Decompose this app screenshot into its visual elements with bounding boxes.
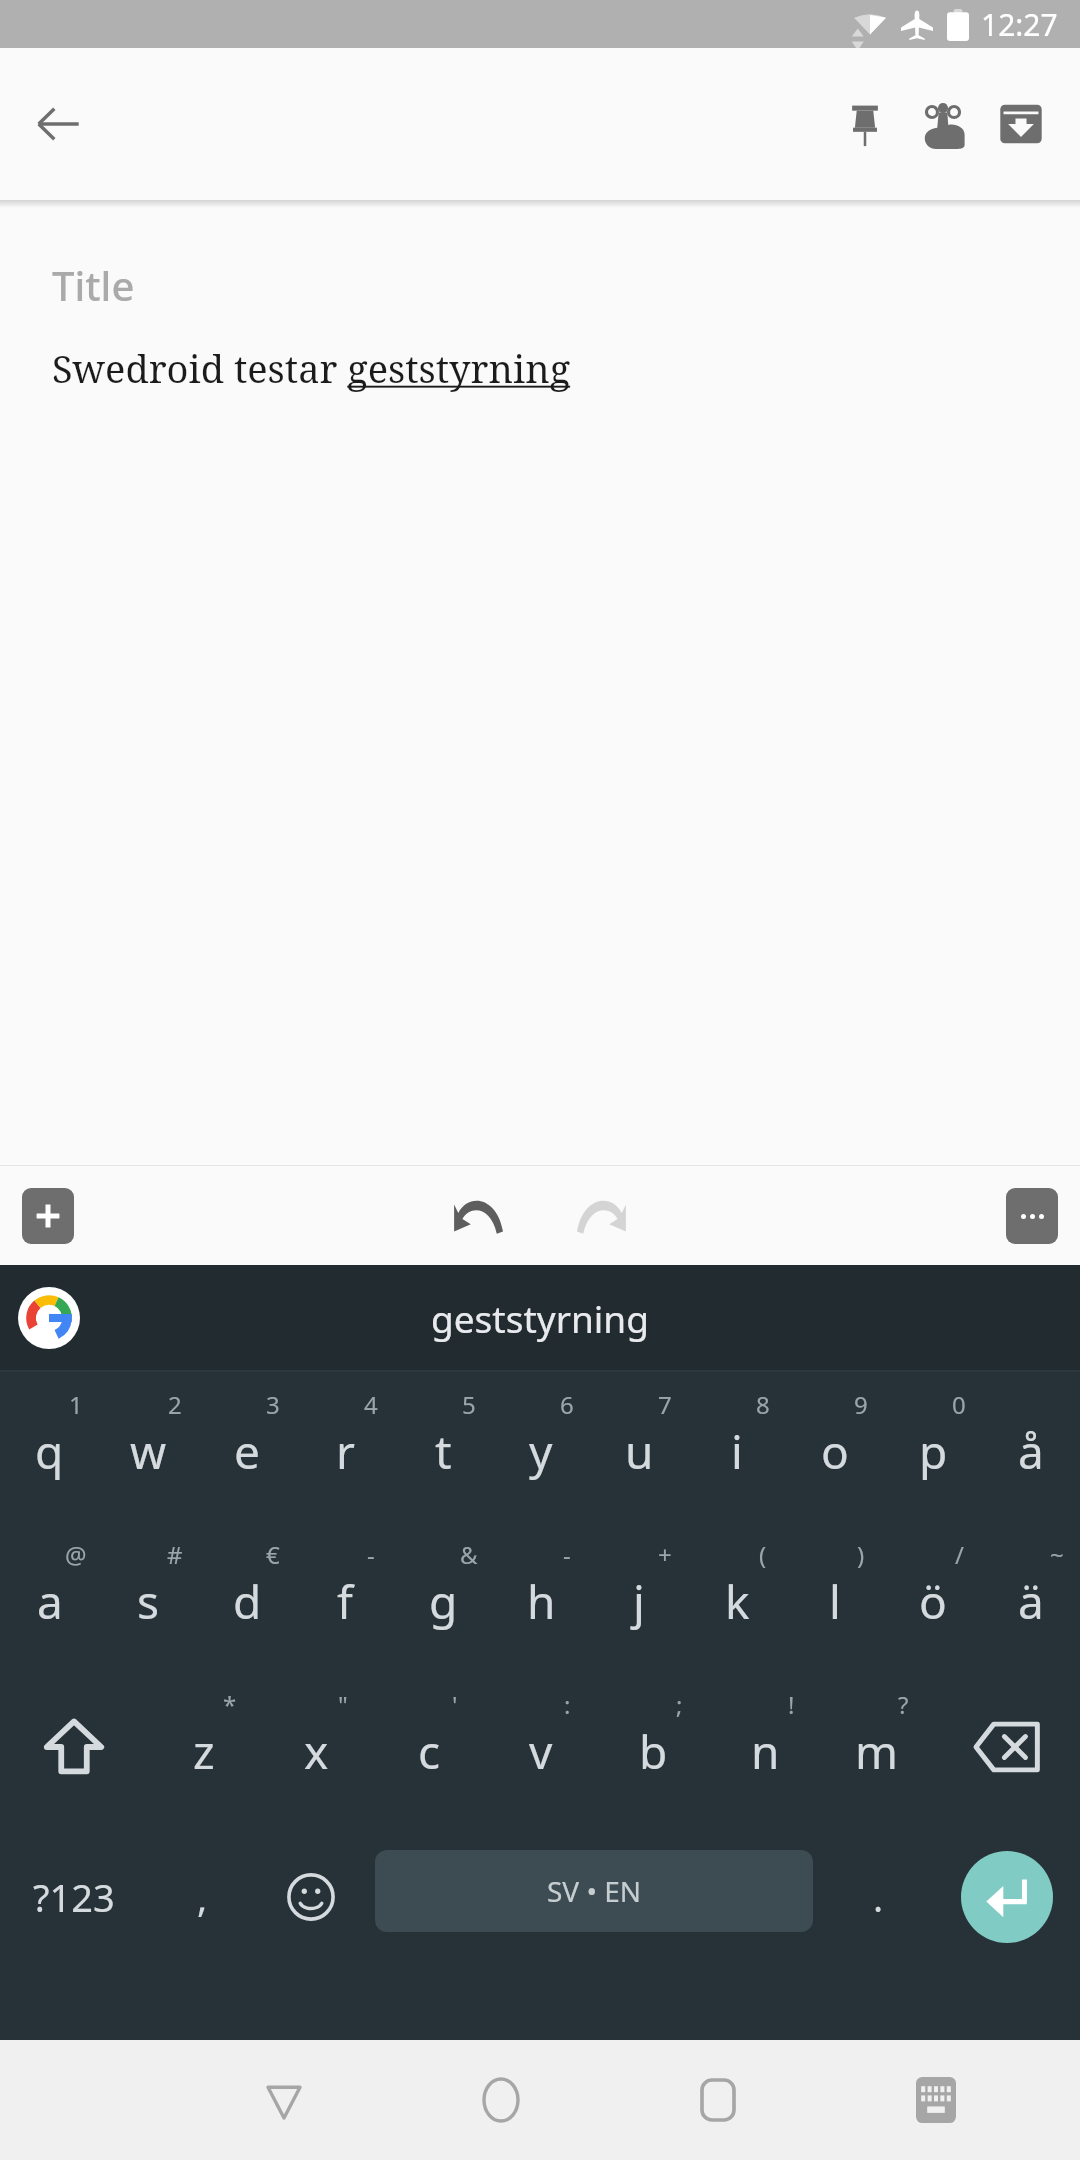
staticText: ä xyxy=(1018,1570,1044,1633)
button[interactable]: b xyxy=(597,1672,709,1822)
button[interactable]: m xyxy=(821,1672,933,1822)
staticText: " xyxy=(338,1688,348,1721)
button[interactable]: Recents xyxy=(609,2040,827,2160)
button[interactable]: p xyxy=(884,1372,982,1522)
staticText: ) xyxy=(857,1538,865,1571)
staticText: ( xyxy=(759,1538,767,1571)
staticText: 8 xyxy=(756,1388,770,1421)
staticText: , xyxy=(197,1871,208,1923)
button[interactable]: Pin xyxy=(826,85,904,163)
staticText: 3 xyxy=(266,1388,280,1421)
button[interactable]: Backspace xyxy=(933,1672,1080,1822)
button[interactable]: f xyxy=(296,1522,394,1672)
staticText: 0 xyxy=(952,1388,966,1421)
button[interactable]: SV • EN xyxy=(375,1850,813,1932)
staticText: € xyxy=(266,1538,280,1571)
staticText: x xyxy=(304,1720,329,1783)
button[interactable]: Reminder xyxy=(904,85,982,163)
button[interactable]: Title xyxy=(52,258,135,312)
staticText: ? xyxy=(898,1688,909,1721)
button[interactable]: , xyxy=(147,1822,257,1972)
staticText: r xyxy=(336,1420,355,1483)
staticText: 12:27 xyxy=(981,4,1058,45)
button[interactable]: ?123 xyxy=(0,1822,147,1972)
staticText: ö xyxy=(919,1570,947,1633)
staticText: + xyxy=(658,1538,672,1571)
staticText: ' xyxy=(452,1688,458,1721)
button[interactable]: x xyxy=(260,1672,373,1822)
staticText: h xyxy=(527,1570,556,1633)
staticText: ~ xyxy=(1050,1538,1064,1571)
staticText: @ xyxy=(65,1538,87,1571)
button[interactable]: Back xyxy=(22,88,94,160)
staticText: & xyxy=(460,1538,478,1571)
button[interactable]: Google search xyxy=(18,1287,80,1349)
staticText: - xyxy=(367,1538,375,1571)
staticText: * xyxy=(223,1688,237,1721)
button[interactable]: geststyrning xyxy=(260,1265,820,1370)
button[interactable]: å xyxy=(982,1372,1080,1522)
staticText: 9 xyxy=(854,1388,868,1421)
staticText: m xyxy=(855,1720,899,1783)
button[interactable]: h xyxy=(492,1522,590,1672)
staticText: c xyxy=(418,1720,441,1783)
button[interactable]: v xyxy=(485,1672,597,1822)
staticText: l xyxy=(829,1570,841,1633)
button[interactable]: More options xyxy=(1006,1188,1058,1244)
staticText: j xyxy=(633,1570,645,1633)
button[interactable]: Shift xyxy=(0,1672,147,1822)
staticText: geststyrning xyxy=(431,1293,649,1343)
staticText: ! xyxy=(788,1688,795,1721)
button[interactable]: Redo xyxy=(555,1168,651,1264)
staticText: g xyxy=(429,1570,458,1633)
staticText: z xyxy=(193,1720,215,1783)
staticText: n xyxy=(751,1720,780,1783)
button[interactable]: l xyxy=(786,1522,884,1672)
staticText: å xyxy=(1018,1420,1044,1483)
button[interactable]: k xyxy=(688,1522,786,1672)
staticText: a xyxy=(37,1570,63,1633)
staticText: 7 xyxy=(658,1388,672,1421)
button[interactable]: ä xyxy=(982,1522,1080,1672)
button[interactable]: Back xyxy=(175,2040,392,2160)
button[interactable]: w xyxy=(99,1372,198,1522)
staticText: d xyxy=(233,1570,262,1633)
button[interactable]: Add xyxy=(22,1188,74,1244)
button[interactable]: d xyxy=(198,1522,296,1672)
button[interactable]: Archive xyxy=(982,85,1060,163)
button[interactable]: c xyxy=(373,1672,485,1822)
button[interactable]: ö xyxy=(884,1522,982,1672)
button[interactable]: Enter xyxy=(933,1822,1080,1972)
staticText: : xyxy=(564,1688,571,1721)
button[interactable]: q xyxy=(0,1372,99,1522)
staticText: 1 xyxy=(69,1388,83,1421)
button[interactable]: s xyxy=(99,1522,198,1672)
button[interactable]: a xyxy=(0,1522,99,1672)
button[interactable]: y xyxy=(492,1372,590,1522)
button[interactable]: Home xyxy=(392,2040,609,2160)
button[interactable]: z xyxy=(147,1672,260,1822)
staticText: y xyxy=(529,1420,553,1483)
button[interactable]: Swedroid testar geststyrning xyxy=(52,342,571,394)
button[interactable]: g xyxy=(394,1522,492,1672)
button[interactable]: r xyxy=(296,1372,394,1522)
button[interactable]: j xyxy=(590,1522,688,1672)
button[interactable]: o xyxy=(786,1372,884,1522)
staticText: t xyxy=(435,1420,452,1483)
button[interactable]: . xyxy=(823,1822,933,1972)
button[interactable]: Emoji xyxy=(257,1822,365,1972)
button[interactable]: i xyxy=(688,1372,786,1522)
button[interactable]: t xyxy=(394,1372,492,1522)
staticText: . xyxy=(873,1871,884,1923)
staticText: 4 xyxy=(364,1388,378,1421)
button[interactable]: e xyxy=(198,1372,296,1522)
staticText: u xyxy=(625,1420,654,1483)
button[interactable]: Undo xyxy=(429,1168,525,1264)
staticText: 5 xyxy=(462,1388,476,1421)
staticText: f xyxy=(337,1570,353,1633)
button[interactable]: u xyxy=(590,1372,688,1522)
button[interactable]: n xyxy=(709,1672,821,1822)
button[interactable]: Switch keyboard xyxy=(827,2040,1045,2160)
staticText: 6 xyxy=(560,1388,574,1421)
staticText: e xyxy=(234,1420,260,1483)
